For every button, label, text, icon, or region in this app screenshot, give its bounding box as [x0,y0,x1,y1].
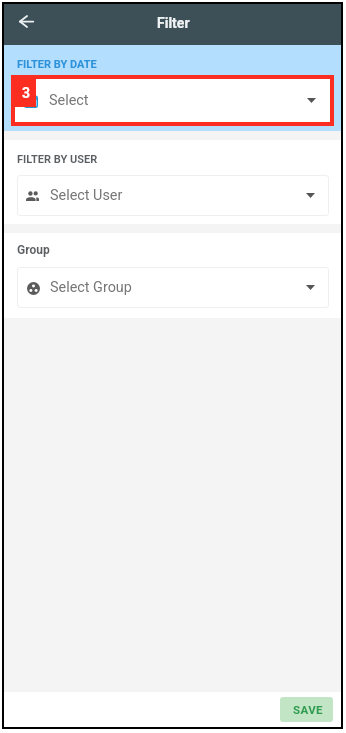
staticText: 3 [22,85,31,101]
staticText: Select [49,92,89,109]
staticText: FILTER BY USER [17,153,98,166]
button[interactable]: Select User [17,175,329,216]
staticText: Select Group [50,279,132,296]
button[interactable]: Back [11,9,42,40]
staticText: FILTER BY DATE [17,58,97,71]
button[interactable]: SAVE [280,697,333,722]
staticText: Group [17,243,50,257]
button[interactable]: Select Group [17,267,329,308]
staticText: Select User [50,187,123,204]
button[interactable]: Select [15,79,330,122]
staticText: Filter [157,15,190,31]
staticText: SAVE [293,703,323,716]
